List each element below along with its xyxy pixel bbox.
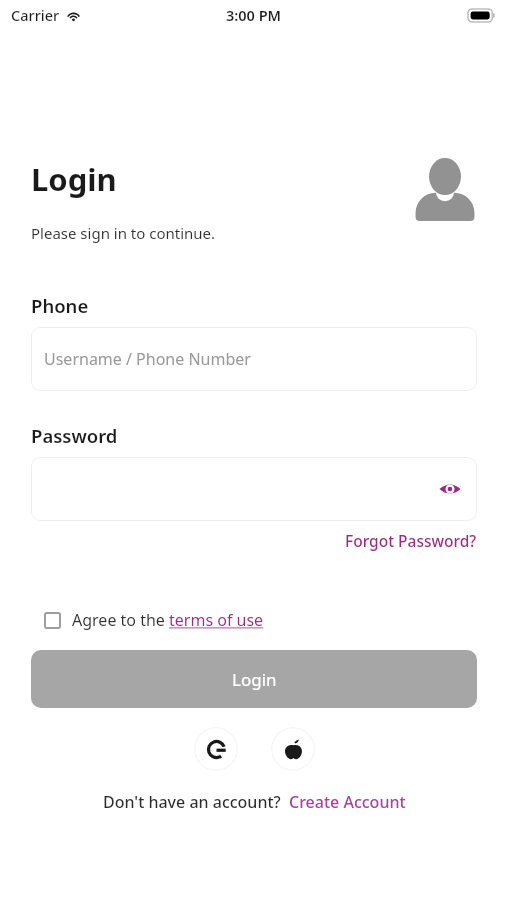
- staticText: Login: [31, 158, 117, 200]
- staticText: 3:00 PM: [226, 5, 282, 25]
- staticText: Agree to the terms of use: [72, 609, 264, 631]
- staticText: Please sign in to continue.: [31, 223, 216, 243]
- button[interactable]: Agree to the terms of use: [44, 609, 264, 631]
- button[interactable]: Show password: [437, 476, 463, 502]
- staticText: Carrier: [11, 5, 60, 25]
- button[interactable]: Username / Phone Number: [31, 327, 477, 391]
- staticText: Login: [232, 668, 277, 691]
- staticText: Username / Phone Number: [44, 348, 251, 370]
- staticText: Don't have an account?: [103, 791, 281, 813]
- staticText: Forgot Password?: [345, 530, 477, 551]
- staticText: Password: [31, 423, 118, 448]
- staticText: Create Account: [289, 791, 406, 813]
- button[interactable]: Login: [31, 650, 477, 708]
- staticText: Phone: [31, 293, 89, 318]
- button[interactable]: Sign in with Apple: [271, 727, 315, 771]
- button[interactable]: Sign in with Google: [194, 727, 238, 771]
- other: Profile avatar: [413, 157, 477, 221]
- button[interactable]: Show password: [31, 457, 477, 521]
- button[interactable]: Create Account: [289, 791, 406, 813]
- button[interactable]: Forgot Password?: [345, 530, 477, 551]
